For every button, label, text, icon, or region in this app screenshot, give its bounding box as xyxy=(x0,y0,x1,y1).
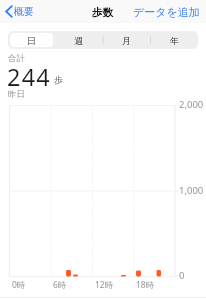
button[interactable]: 月 xyxy=(104,33,148,47)
staticText: 2,000 xyxy=(179,98,204,111)
staticText: 1,000 xyxy=(179,184,204,197)
staticText: 昨日 xyxy=(8,89,25,100)
staticText: 12時 xyxy=(95,279,114,291)
staticText: 0 xyxy=(179,269,185,282)
staticText: 歩数 xyxy=(92,6,113,19)
button[interactable]: 日 xyxy=(10,33,53,47)
staticText: 月 xyxy=(122,35,131,46)
staticText: 日 xyxy=(27,35,36,46)
staticText: 概要 xyxy=(14,5,34,18)
staticText: 18時 xyxy=(136,279,155,291)
button[interactable]: 年 xyxy=(152,33,196,47)
staticText: 週 xyxy=(74,35,83,46)
button[interactable]: 概要 xyxy=(1,1,37,22)
staticText: 歩 xyxy=(54,74,63,85)
staticText: データを追加 xyxy=(133,5,200,19)
staticText: 244 xyxy=(7,61,51,93)
staticText: 6時 xyxy=(53,279,67,291)
staticText: 合計 xyxy=(8,53,25,64)
button[interactable]: 週 xyxy=(57,33,100,47)
button[interactable]: データを追加 xyxy=(131,2,202,21)
staticText: 年 xyxy=(170,35,179,46)
staticText: 0時 xyxy=(12,279,26,291)
